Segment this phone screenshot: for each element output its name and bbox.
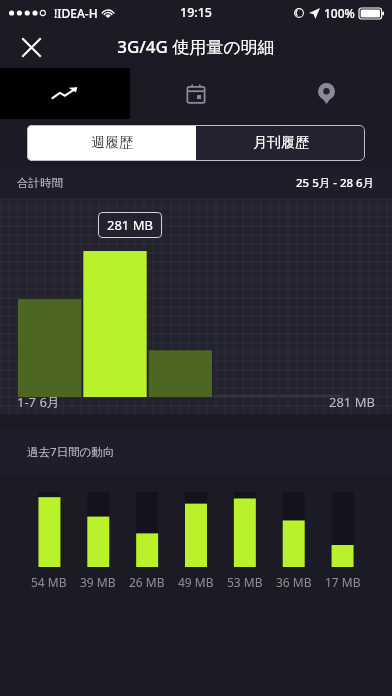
staticText: 281 MB bbox=[107, 216, 153, 234]
staticText: 39 MB bbox=[80, 574, 116, 590]
staticText: !IDEA-H bbox=[54, 5, 98, 21]
button[interactable]: Location bbox=[261, 68, 392, 119]
staticText: 合計時間 bbox=[17, 176, 63, 190]
staticText: 3G/4G 使用量の明細 bbox=[117, 35, 275, 58]
staticText: 281 MB bbox=[329, 393, 375, 411]
button[interactable]: Usage trend bbox=[0, 68, 130, 119]
button[interactable]: Calendar bbox=[130, 68, 261, 119]
staticText: 過去7日間の動向 bbox=[27, 444, 115, 460]
button[interactable]: 月刊履歴 bbox=[196, 125, 365, 161]
staticText: 26 MB bbox=[129, 574, 165, 590]
staticText: 週履歴 bbox=[91, 134, 133, 152]
staticText: 1-7 6月 bbox=[17, 393, 60, 411]
staticText: 49 MB bbox=[178, 574, 214, 590]
staticText: 54 MB bbox=[31, 574, 67, 590]
staticText: 53 MB bbox=[227, 574, 263, 590]
staticText: 月刊履歴 bbox=[253, 134, 309, 152]
button[interactable]: 週履歴 bbox=[27, 125, 196, 161]
staticText: 17 MB bbox=[325, 574, 361, 590]
staticText: 25 5月 - 28 6月 bbox=[296, 175, 375, 191]
staticText: 19:15 bbox=[180, 4, 213, 21]
staticText: 100% bbox=[324, 5, 355, 21]
staticText: 36 MB bbox=[276, 574, 312, 590]
button[interactable]: Close bbox=[10, 26, 52, 68]
